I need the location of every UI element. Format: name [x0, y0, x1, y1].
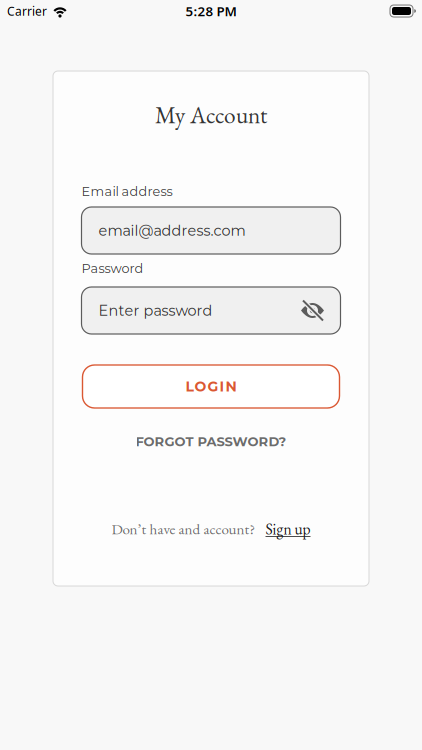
staticText: 5:28 PM — [185, 2, 236, 20]
staticText: Password — [81, 261, 143, 276]
button[interactable]: FORGOT PASSWORD? — [81, 432, 340, 451]
staticText: email@address.com — [98, 222, 245, 239]
button[interactable]: Sign up — [265, 519, 310, 539]
staticText: L O G I N — [185, 378, 236, 395]
staticText: FORGOT PASSWORD? — [135, 433, 286, 449]
staticText: Enter password — [98, 302, 212, 319]
staticText: Sign up — [265, 519, 310, 539]
staticText: Email address — [81, 184, 172, 199]
button[interactable]: Enter password — [81, 287, 340, 334]
staticText: My Account — [155, 100, 267, 130]
staticText: Don’t have and account? — [111, 519, 255, 539]
button[interactable]: L O G I N — [82, 365, 339, 408]
staticText: Carrier — [7, 3, 47, 19]
button[interactable]: email@address.com — [81, 207, 340, 254]
